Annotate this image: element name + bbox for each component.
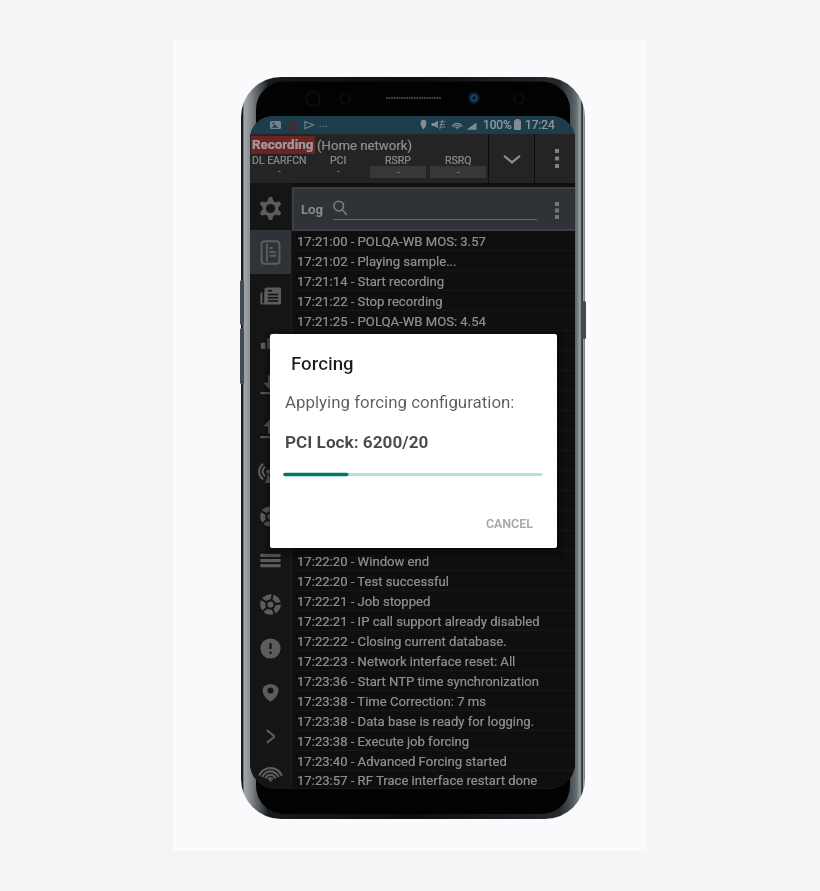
button[interactable]: More options [535,134,575,183]
button[interactable]: Upload [250,406,291,450]
staticText: 17:22:22 - Closing current database. [297,634,507,649]
button[interactable]: Network scan [250,494,291,538]
staticText: - [397,167,400,178]
button[interactable]: 17:23:40 - Advanced Forcing started [292,751,575,771]
button[interactable]: 17:21:22 - Stop recording [292,291,575,311]
staticText: 17:21:25 - POLQA-WB MOS: 4.54 [297,314,486,329]
button[interactable]: 17:22:17 - Window start [292,491,575,511]
staticText: Forcing [291,353,354,375]
staticText: 17:23:38 - Execute job forcing [297,734,470,749]
staticText: ... [319,117,328,130]
button[interactable]: 17:21:25 - POLQA-WB MOS: 4.54 [292,311,575,331]
staticText: PCI [330,154,347,166]
staticText: Applying forcing configuration: [285,392,515,412]
staticText: 17:21:50 - POLQA-WB MOS: 4.21 [297,394,486,409]
button[interactable]: Download [250,362,291,406]
staticText: 17:21:22 - Stop recording [297,294,443,309]
button[interactable]: Next [250,714,291,758]
staticText: 17:22:04 - Start recording [297,434,445,449]
staticText: 100% [483,118,512,132]
button[interactable]: 17:22:20 - Test successful [292,571,575,591]
staticText: 17:21:14 - Start recording [297,274,445,289]
staticText: - [457,167,460,178]
staticText: 17:23:57 - RF Trace interface restart do… [297,773,538,788]
button[interactable]: 17:22:15 - POLQA-WB MOS: 3.92 [292,471,575,491]
button[interactable]: 17:22:04 - Start recording [292,431,575,451]
staticText: 17:21:39 - Start recording [297,354,445,369]
button[interactable]: Data ball [250,582,291,626]
button[interactable]: 17:22:21 - Job stopped [292,591,575,611]
staticText: 17:23:38 - Time Correction: 7 ms [297,694,486,709]
staticText: (Home network) [317,138,413,153]
staticText: 17:22:20 - Test successful [297,574,449,589]
staticText: 17:22:21 - IP call support already disab… [297,614,540,629]
button[interactable]: Location [250,670,291,714]
button[interactable]: 17:21:00 - POLQA-WB MOS: 3.57 [292,231,575,251]
staticText: 17:21:00 - POLQA-WB MOS: 3.57 [297,234,486,249]
button[interactable]: Alerts [250,626,291,670]
button[interactable]: Wi-Fi [250,758,291,789]
staticText: 17:22:23 - Network interface reset: All [297,654,516,669]
button[interactable]: Expand details [489,134,534,183]
button[interactable]: Reports [250,274,291,318]
button[interactable]: 17:21:14 - Start recording [292,271,575,291]
staticText: PCI Lock: 6200/20 [285,432,429,452]
staticText: 17:22:20 - Window end [297,554,430,569]
button[interactable]: 17:23:57 - RF Trace interface restart do… [292,771,575,789]
button[interactable]: 17:21:52 - Playing sample... [292,411,575,431]
button[interactable]: CANCEL [477,510,541,536]
staticText: - [278,166,281,177]
staticText: 17:23:38 - Data base is ready for loggin… [297,714,535,729]
button[interactable]: 17:21:02 - Playing sample... [292,251,575,271]
button[interactable]: 17:22:21 - IP call support already disab… [292,611,575,631]
staticText: 17:23:40 - Advanced Forcing started [297,754,507,769]
staticText: CANCEL [486,516,533,531]
staticText: 17:22:21 - Job stopped [297,594,431,609]
button[interactable]: Log menu [546,199,568,221]
staticText: 17:22:15 - POLQA-WB MOS: 3.92 [297,474,486,489]
button[interactable]: 17:22:19 - Measurement done [292,531,575,551]
staticText: Recording [252,137,314,153]
button[interactable]: Settings [250,186,291,230]
button[interactable]: 17:21:47 - Stop recording [292,371,575,391]
button[interactable]: Log [250,230,291,274]
button[interactable]: 17:21:50 - POLQA-WB MOS: 4.21 [292,391,575,411]
staticText: DL EARFCN [252,154,307,166]
button[interactable]: 17:22:23 - Network interface reset: All [292,651,575,671]
button[interactable]: 17:22:20 - Window end [292,551,575,571]
button[interactable]: 17:22:18 - Measuring... [292,511,575,531]
staticText: 17:24 [525,118,555,132]
staticText: 17:21:02 - Playing sample... [297,254,457,269]
staticText: RSRQ [445,154,472,166]
staticText: Log [301,202,324,217]
staticText: 17:23:36 - Start NTP time synchronizatio… [297,674,539,689]
button[interactable]: Statistics [250,318,291,362]
button[interactable]: Signalling [250,450,291,494]
button[interactable]: 17:23:38 - Time Correction: 7 ms [292,691,575,711]
staticText: RSRP [385,154,411,166]
button[interactable]: Menu [250,538,291,582]
button[interactable]: 17:23:36 - Start NTP time synchronizatio… [292,671,575,691]
button[interactable]: 17:22:12 - Stop recording [292,451,575,471]
button[interactable]: 17:23:38 - Data base is ready for loggin… [292,711,575,731]
button[interactable]: 17:21:27 - Playing sample... [292,331,575,351]
button[interactable]: 17:21:39 - Start recording [292,351,575,371]
button[interactable]: 17:22:22 - Closing current database. [292,631,575,651]
staticText: Q [288,119,297,133]
staticText: 17:22:19 - Measurement done [297,534,471,549]
staticText: - [337,166,340,177]
button[interactable]: 17:23:38 - Execute job forcing [292,731,575,751]
